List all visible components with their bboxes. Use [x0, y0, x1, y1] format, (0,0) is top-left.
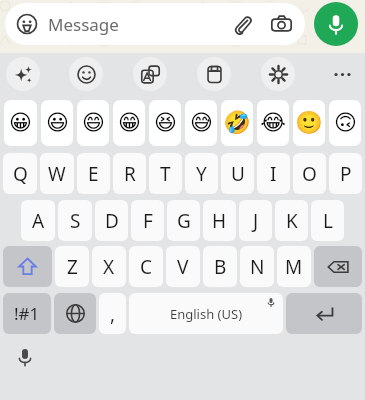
button[interactable]: ,: [99, 293, 126, 334]
button[interactable]: B: [203, 246, 237, 287]
staticText: R: [124, 161, 136, 187]
other: Sticker: [16, 13, 38, 35]
button[interactable]: J: [239, 200, 272, 241]
button[interactable]: !#1: [3, 293, 51, 334]
staticText: O: [302, 161, 317, 187]
button[interactable]: Y: [185, 153, 218, 194]
button[interactable]: Voice message: [314, 2, 358, 46]
staticText: ,: [110, 301, 116, 327]
staticText: 😀: [9, 110, 32, 136]
staticText: X: [103, 254, 115, 280]
button[interactable]: X: [92, 246, 126, 287]
button[interactable]: H: [203, 200, 236, 241]
button[interactable]: 🙃: [329, 100, 361, 146]
button[interactable]: U: [221, 153, 254, 194]
button[interactable]: L: [311, 200, 344, 241]
button[interactable]: O: [293, 153, 326, 194]
button[interactable]: Q: [3, 153, 37, 194]
staticText: L: [323, 208, 333, 234]
staticText: 🤣: [223, 110, 251, 136]
button[interactable]: M: [277, 246, 311, 287]
button[interactable]: I: [257, 153, 290, 194]
button[interactable]: 😆: [149, 100, 181, 146]
button[interactable]: D: [95, 200, 128, 241]
staticText: H: [212, 208, 227, 234]
staticText: S: [70, 208, 81, 234]
staticText: P: [340, 161, 352, 187]
button[interactable]: Camera: [268, 11, 294, 37]
staticText: 😅: [190, 110, 213, 136]
button[interactable]: AI suggestions: [6, 57, 40, 91]
button[interactable]: 😃: [41, 100, 73, 146]
staticText: 😄: [82, 110, 105, 136]
staticText: Q: [13, 161, 28, 187]
staticText: Z: [67, 254, 78, 280]
button[interactable]: 😂: [257, 100, 289, 146]
button[interactable]: Voice input: [10, 342, 40, 372]
staticText: J: [253, 208, 259, 234]
button[interactable]: Emoji: [69, 57, 103, 91]
button[interactable]: English (US): [129, 293, 283, 334]
button[interactable]: 😁: [113, 100, 145, 146]
staticText: 😁: [118, 110, 141, 136]
button[interactable]: Shift: [3, 246, 52, 287]
button[interactable]: W: [40, 153, 74, 194]
staticText: 🙂: [295, 110, 323, 136]
staticText: F: [143, 208, 153, 234]
button[interactable]: T: [149, 153, 182, 194]
staticText: 😃: [46, 110, 69, 136]
button[interactable]: R: [113, 153, 146, 194]
button[interactable]: Z: [55, 246, 89, 287]
button[interactable]: 😀: [4, 100, 37, 146]
staticText: A: [32, 208, 45, 234]
button[interactable]: 😅: [185, 100, 217, 146]
button[interactable]: P: [329, 153, 362, 194]
staticText: G: [177, 208, 191, 234]
button[interactable]: Settings: [261, 57, 295, 91]
staticText: K: [286, 208, 298, 234]
button[interactable]: 🙂: [293, 100, 325, 146]
staticText: Y: [196, 161, 207, 187]
button[interactable]: A: [21, 200, 55, 241]
button[interactable]: N: [240, 246, 274, 287]
button[interactable]: C: [129, 246, 163, 287]
staticText: I: [270, 161, 277, 187]
staticText: E: [88, 161, 99, 187]
staticText: T: [160, 161, 171, 187]
staticText: U: [231, 161, 245, 187]
button[interactable]: Clipboard: [197, 57, 231, 91]
staticText: B: [214, 254, 227, 280]
button[interactable]: More options: [325, 57, 359, 91]
button[interactable]: S: [58, 200, 92, 241]
staticText: W: [48, 161, 66, 187]
button[interactable]: Change language: [54, 293, 96, 334]
staticText: N: [250, 254, 265, 280]
button[interactable]: V: [166, 246, 200, 287]
staticText: English (US): [170, 305, 243, 323]
staticText: C: [140, 254, 153, 280]
staticText: 😆: [154, 110, 177, 136]
button[interactable]: Translate: [133, 57, 167, 91]
staticText: !#1: [14, 302, 40, 325]
button[interactable]: Attach: [229, 11, 255, 37]
staticText: 😂: [260, 110, 286, 136]
button[interactable]: G: [167, 200, 200, 241]
staticText: 🙃: [334, 110, 357, 136]
button[interactable]: Enter: [286, 293, 362, 334]
button[interactable]: K: [275, 200, 308, 241]
staticText: M: [285, 254, 303, 280]
button[interactable]: Backspace: [314, 246, 362, 287]
button[interactable]: E: [77, 153, 110, 194]
button[interactable]: 🤣: [221, 100, 253, 146]
button[interactable]: Sticker: [5, 3, 305, 45]
staticText: D: [105, 208, 119, 234]
staticText: V: [177, 254, 189, 280]
button[interactable]: F: [131, 200, 164, 241]
staticText: Message: [48, 13, 119, 36]
button[interactable]: 😄: [77, 100, 109, 146]
